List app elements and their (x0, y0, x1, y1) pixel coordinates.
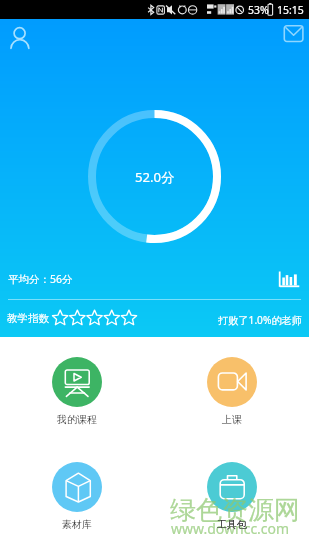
staticText: 52.0分 (135, 168, 175, 186)
button[interactable]: 工具包 (192, 462, 272, 531)
staticText: 打败了1.0%的老师 (218, 313, 302, 327)
staticText: 53% (248, 3, 269, 17)
staticText: 教学指数 (7, 312, 49, 325)
staticText: 上课 (222, 413, 242, 426)
button[interactable]: Messages (280, 21, 308, 47)
button[interactable]: 我的课程 (37, 357, 117, 426)
button[interactable]: 素材库 (37, 462, 117, 531)
staticText: 15:15 (277, 3, 304, 17)
staticText: www.downcc.com (171, 519, 290, 538)
button[interactable]: Profile (6, 22, 34, 52)
staticText: 工具包 (217, 518, 247, 531)
staticText: 平均分：56分 (8, 272, 73, 286)
button[interactable]: Statistics (276, 265, 302, 291)
staticText: 工具包 (217, 518, 247, 531)
button[interactable]: 上课 (192, 357, 272, 426)
staticText: 我的课程 (57, 413, 97, 426)
staticText: 绿色资源网 (170, 494, 300, 527)
staticText: 素材库 (62, 518, 92, 531)
